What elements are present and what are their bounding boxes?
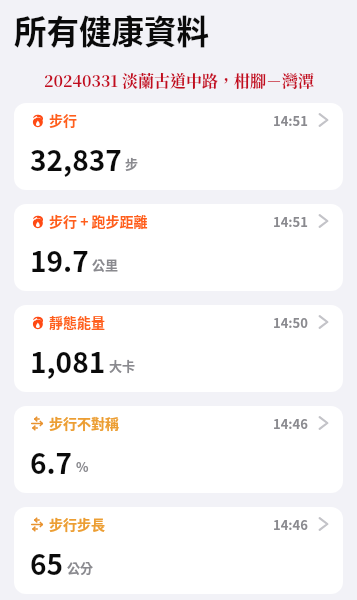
staticText: 步行不對稱 (49, 413, 119, 433)
button[interactable]: 靜態能量 (14, 305, 343, 392)
staticText: 步 (125, 154, 139, 173)
staticText: 6.7 (30, 442, 73, 483)
staticText: 14:51 (273, 111, 308, 130)
staticText: 20240331 淡蘭古道中路，柑腳－灣潭 (44, 69, 314, 92)
button[interactable]: 步行 + 跑步距離 (14, 204, 343, 291)
staticText: 靜態能量 (49, 312, 105, 332)
staticText: 14:46 (273, 414, 308, 433)
staticText: 14:50 (273, 313, 308, 332)
staticText: 14:51 (273, 212, 308, 231)
staticText: 65 (30, 543, 64, 584)
button[interactable]: 步行 (14, 103, 343, 190)
staticText: 步行 (49, 110, 77, 130)
button[interactable]: 步行步長 (14, 507, 343, 594)
staticText: 公里 (92, 255, 119, 274)
staticText: 所有健康資料 (14, 6, 210, 53)
button[interactable]: 步行不對稱 (14, 406, 343, 493)
staticText: 19.7 (30, 240, 89, 281)
staticText: 32,837 (30, 139, 122, 180)
staticText: % (76, 457, 89, 476)
staticText: 大卡 (109, 356, 136, 375)
staticText: 1,081 (30, 341, 106, 382)
staticText: 公分 (67, 558, 94, 577)
staticText: 14:46 (273, 515, 308, 534)
staticText: 步行步長 (49, 514, 105, 534)
staticText: 步行 + 跑步距離 (49, 211, 148, 231)
